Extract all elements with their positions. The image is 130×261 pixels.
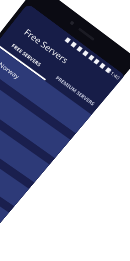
button[interactable]: Germany xyxy=(0,97,49,182)
button[interactable]: PREMIUM SERVERS xyxy=(46,67,103,113)
button[interactable]: FREE SERVERS xyxy=(0,30,56,79)
button[interactable]: Norway xyxy=(0,45,91,133)
staticText: Free Servers xyxy=(22,26,71,66)
button[interactable]: Canada xyxy=(0,123,29,206)
button[interactable]: Japan xyxy=(0,71,70,158)
staticText: FREE SERVERS xyxy=(10,42,43,68)
staticText: Norway xyxy=(0,60,21,81)
staticText: 11:40 xyxy=(107,68,121,81)
button[interactable]: France xyxy=(0,148,9,230)
staticText: PREMIUM SERVERS xyxy=(54,74,96,107)
